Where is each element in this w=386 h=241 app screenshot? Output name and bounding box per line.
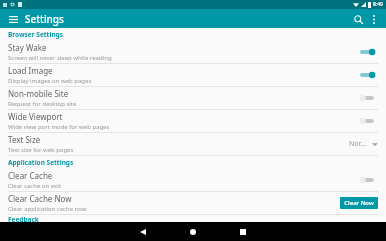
- staticText: Screen will never sleep while reading: [8, 54, 112, 62]
- staticText: Load Image: [8, 65, 53, 76]
- staticText: Text size for web pages: [8, 146, 74, 154]
- staticText: Text Size: [8, 134, 41, 145]
- staticText: Clear Cache Now: [8, 193, 72, 204]
- staticText: Browser Settings: [8, 30, 63, 39]
- staticText: Settings: [25, 12, 64, 26]
- button[interactable]: More options: [366, 11, 382, 27]
- staticText: Wide view port mode for web pages: [8, 123, 110, 131]
- button[interactable]: Clear Now: [340, 197, 378, 209]
- button[interactable]: Switch off: [358, 114, 378, 128]
- button[interactable]: Switch off: [358, 173, 378, 187]
- button[interactable]: Switch on: [358, 45, 378, 59]
- button[interactable]: Back: [130, 222, 156, 241]
- staticText: Clear Cache: [8, 170, 53, 181]
- button[interactable]: Open navigation menu: [6, 12, 20, 26]
- button[interactable]: Switch off: [358, 91, 378, 105]
- button[interactable]: Text Size: [0, 133, 386, 155]
- staticText: Stay Wake: [8, 42, 47, 53]
- button[interactable]: Load Image: [0, 64, 386, 86]
- staticText: Clear cache on exit: [8, 182, 61, 190]
- staticText: Feedback: [8, 215, 39, 222]
- staticText: Application Settings: [8, 158, 74, 167]
- staticText: Display images on web pages: [8, 77, 92, 85]
- button[interactable]: Search: [350, 11, 366, 27]
- staticText: Non-mobile Site: [8, 88, 69, 99]
- button[interactable]: Clear Cache Now: [0, 192, 386, 214]
- staticText: 8:49: [373, 1, 383, 8]
- button[interactable]: Switch on: [358, 68, 378, 82]
- staticText: Clear application cache now: [8, 205, 87, 213]
- staticText: Request for desktop site: [8, 100, 77, 108]
- button[interactable]: Stay Wake: [0, 41, 386, 63]
- staticText: Clear Now: [344, 199, 374, 207]
- button[interactable]: Non-mobile Site: [0, 87, 386, 109]
- staticText: Nor...: [349, 139, 366, 149]
- button[interactable]: Clear Cache: [0, 169, 386, 191]
- staticText: Wide Viewport: [8, 111, 63, 122]
- button[interactable]: Recent apps: [230, 222, 256, 241]
- button[interactable]: Home: [180, 222, 206, 241]
- button[interactable]: Wide Viewport: [0, 110, 386, 132]
